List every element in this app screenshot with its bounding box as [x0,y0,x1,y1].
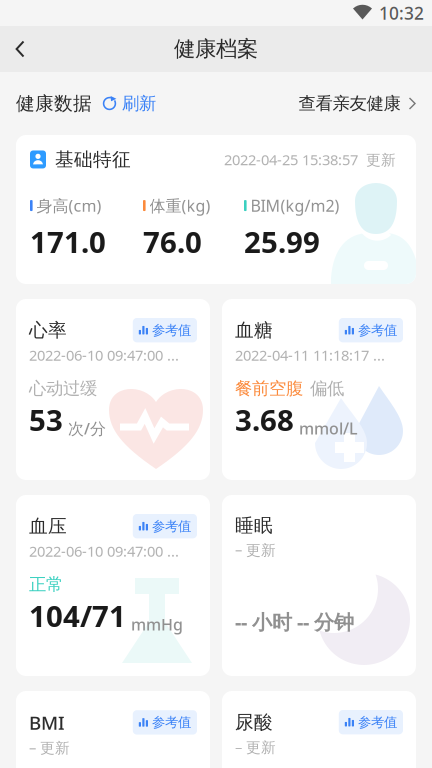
staticText: 健康数据 [16,92,92,115]
staticText: 刷新 [122,93,156,114]
staticText: – 更新 [235,737,276,757]
staticText: 76.0 [143,222,202,261]
staticText: 参考值 [152,714,191,731]
staticText: 血压 [29,515,67,538]
staticText: 尿酸 [235,711,273,734]
button[interactable]: 刷新 [92,93,156,114]
button[interactable]: 尿酸 [222,691,416,768]
staticText: 参考值 [358,322,397,338]
staticText: 睡眠 [235,514,273,537]
staticText: mmHg [131,614,183,635]
button[interactable]: 血压 [16,495,210,676]
staticText: 心率 [29,319,67,342]
staticText: 基础特征 [55,148,131,171]
staticText: BMI [29,710,65,735]
staticText: 体重(kg) [150,195,211,216]
staticText: 餐前空腹 [235,378,303,399]
staticText: 2022-06-10 09:47:00 ... [29,541,179,561]
button[interactable]: 基础特征 [16,135,416,284]
staticText: mmol/L [299,418,358,439]
staticText: 健康档案 [174,36,258,62]
button[interactable]: Back [0,26,40,72]
staticText: 血糖 [235,319,273,342]
staticText: 偏低 [310,378,344,399]
staticText: 查看亲友健康 [298,93,400,114]
staticText: 10:32 [379,1,424,24]
staticText: 2022-04-25 15:38:57 更新 [224,150,396,169]
staticText: 25.99 [244,222,320,261]
button[interactable]: 血糖 [222,299,416,480]
staticText: 104/71 [29,596,126,635]
staticText: 次/分 [68,418,106,439]
staticText: 参考值 [152,518,191,534]
button[interactable]: 心率 [16,299,210,480]
staticText: 2022-06-10 09:47:00 ... [29,345,179,365]
staticText: BIM(kg/m2) [251,195,340,216]
staticText: – 更新 [235,540,276,559]
staticText: 心动过缓 [29,378,97,399]
staticText: 171.0 [30,222,106,261]
staticText: 53 [29,400,63,439]
button[interactable]: 睡眠 [222,495,416,676]
button[interactable]: BMI [16,691,210,768]
staticText: 3.68 [235,400,294,439]
staticText: 身高(cm) [37,195,102,216]
staticText: 参考值 [152,322,191,338]
staticText: -- 小时 -- 分钟 [235,608,354,635]
staticText: 正常 [29,574,63,595]
staticText: – 更新 [29,738,70,757]
staticText: 2022-04-11 11:18:17 ... [235,345,385,365]
button[interactable]: 查看亲友健康 [298,93,416,114]
staticText: 参考值 [358,714,397,730]
